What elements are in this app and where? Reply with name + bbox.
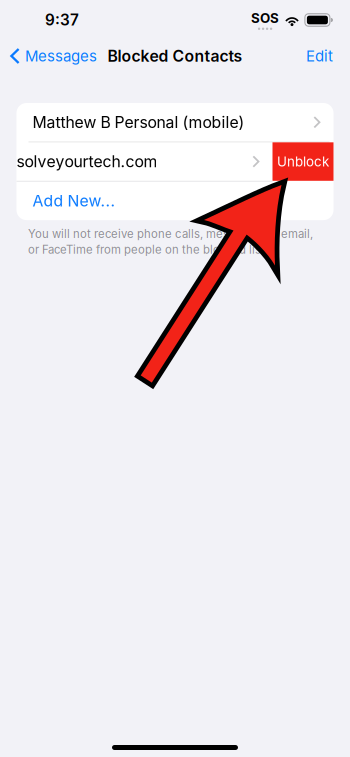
button[interactable]: Unblock <box>272 142 333 181</box>
staticText: 9:37 <box>45 11 79 29</box>
staticText: Edit <box>306 47 333 65</box>
staticText: You will not receive phone calls, messag… <box>28 227 313 241</box>
button[interactable]: Edit <box>289 40 350 72</box>
staticText: Blocked Contacts <box>107 46 242 65</box>
staticText: Messages <box>25 47 97 65</box>
staticText: Add New... <box>32 191 115 210</box>
button[interactable]: solveyourtech.com <box>16 142 272 181</box>
staticText: or FaceTime from people on the blocked l… <box>28 243 268 256</box>
button[interactable]: Matthew B Personal (mobile) <box>16 103 333 141</box>
staticText: Unblock <box>277 153 329 170</box>
button[interactable]: Add New... <box>16 182 333 220</box>
staticText: SOS <box>251 10 279 26</box>
button[interactable]: Messages <box>0 40 105 72</box>
staticText: Matthew B Personal (mobile) <box>32 113 244 132</box>
staticText: solveyourtech.com <box>16 152 157 171</box>
